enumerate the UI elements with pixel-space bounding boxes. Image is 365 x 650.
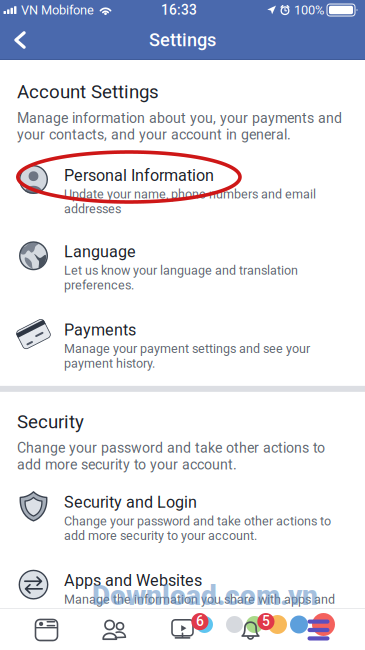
staticText: Manage information about you, your payme…	[17, 110, 342, 143]
staticText: Account Settings	[17, 81, 159, 103]
staticText: 6	[196, 613, 204, 629]
button[interactable]: Notifications	[216, 613, 284, 647]
button[interactable]: Language	[0, 226, 365, 303]
button[interactable]: Back	[0, 20, 40, 60]
staticText: Update your name, phone numbers and emai…	[64, 187, 316, 216]
staticText: Let us know your language and translatio…	[64, 263, 298, 293]
staticText: VN Mobifone	[21, 2, 94, 17]
staticText: 16:33	[161, 2, 197, 18]
staticText: Security and Login	[64, 493, 197, 512]
staticText: Language	[64, 242, 136, 261]
staticText: Payments	[64, 321, 136, 339]
button[interactable]: Friends	[80, 613, 148, 647]
staticText: Change your password and take other acti…	[17, 440, 325, 473]
button[interactable]: Menu	[284, 613, 352, 647]
button[interactable]: Apps and Websites	[0, 553, 365, 631]
staticText: Apps and Websites	[64, 571, 202, 590]
staticText: Manage the information you share with ap…	[64, 592, 335, 621]
button[interactable]: Security and Login	[0, 473, 365, 553]
staticText: Settings	[149, 29, 216, 51]
button[interactable]: Watch	[148, 613, 216, 647]
staticText: Security	[17, 411, 84, 433]
staticText: Change your password and take other acti…	[64, 514, 331, 543]
staticText: 5	[262, 613, 270, 629]
staticText: Manage your payment settings and see you…	[64, 341, 310, 371]
staticText: 100%	[294, 2, 324, 17]
button[interactable]: News Feed	[12, 613, 80, 647]
staticText: Download.com.vn	[92, 579, 318, 612]
button[interactable]: Payments	[0, 303, 365, 380]
button[interactable]: Personal Information	[0, 143, 365, 226]
staticText: Personal Information	[64, 166, 214, 185]
